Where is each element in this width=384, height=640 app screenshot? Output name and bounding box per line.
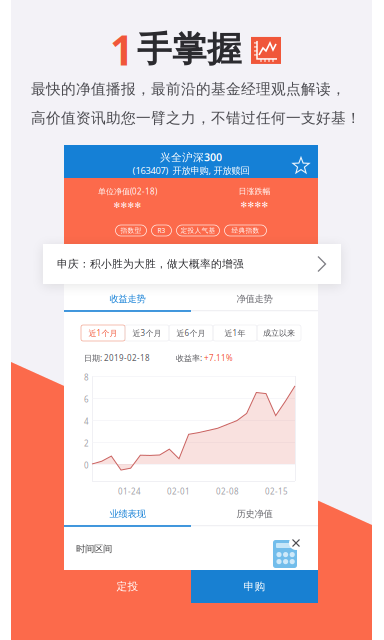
staticText: 02-01 [167,486,190,497]
button[interactable]: 近3个月 [125,325,169,341]
staticText: (163407) 开放申购, 开放赎回 [132,164,249,177]
staticText: 01-24 [118,486,141,497]
staticText: 近6个月 [176,328,205,338]
button[interactable]: 收益走势 [64,288,191,310]
button[interactable]: 收藏 [288,153,314,179]
staticText: 2 [84,438,89,449]
staticText: 成立以来 [263,328,295,338]
button[interactable]: 近1年 [213,325,257,341]
staticText: 申购 [243,580,265,593]
button[interactable]: 定投 [64,570,191,603]
button[interactable]: 成立以来 [257,325,301,341]
button[interactable]: 近1个月 [81,325,125,341]
staticText: 02-15 [265,486,288,497]
staticText: 最快的净值播报，最前沿的基金经理观点解读， [31,80,346,98]
staticText: +7.11% [204,353,233,363]
staticText: 8 [84,372,89,383]
staticText: 指数型 [120,226,141,235]
staticText: ✻✻✻✻ [113,201,141,210]
button[interactable]: 历史净值 [191,503,318,525]
button[interactable]: 申购 [191,570,318,603]
staticText: 兴全沪深300 [160,150,222,164]
button[interactable]: 净值走势 [191,288,318,310]
staticText: 近1个月 [88,328,117,338]
staticText: 近1年 [224,328,245,338]
staticText: 定投人气基 [180,226,215,235]
staticText: 申庆：积小胜为大胜，做大概率的增强 [57,257,244,270]
staticText: 手掌握 [137,28,242,71]
staticText: 0 [84,460,89,471]
staticText: 6 [84,394,89,405]
staticText: 02-08 [216,486,239,497]
button[interactable]: 近6个月 [169,325,213,341]
staticText: 收益率: [176,353,204,363]
staticText: 收益走势 [109,293,145,305]
staticText: 净值走势 [236,293,272,305]
staticText: R3 [157,226,165,235]
staticText: 近3个月 [132,328,161,338]
staticText: 历史净值 [236,508,272,520]
staticText: 高价值资讯助您一臂之力，不错过任何一支好基！ [31,109,361,127]
staticText: 日期: 2019-02-18 [84,353,150,363]
staticText: 1 [110,22,134,77]
staticText: 4 [84,416,89,427]
button[interactable]: 申庆：积小胜为大胜，做大概率的增强 [43,244,341,284]
button[interactable]: 业绩表现 [64,503,191,525]
staticText: 定投 [116,580,138,593]
staticText: 日涨跌幅 [238,186,270,196]
staticText: 单位净值(02-18) [98,186,157,197]
staticText: ✻✻✻✻ [240,200,268,209]
staticText: 业绩表现 [109,508,145,520]
staticText: 时间区间 [76,543,112,555]
staticText: 经典指数 [231,226,259,235]
